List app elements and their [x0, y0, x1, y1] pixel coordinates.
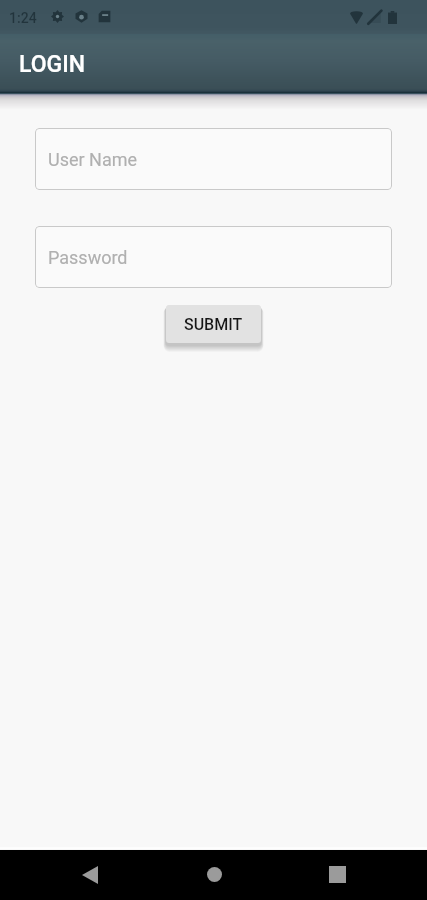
staticText: Password: [48, 247, 128, 268]
button[interactable]: Home: [186, 850, 242, 900]
button[interactable]: Password: [35, 226, 392, 288]
staticText: 1:24: [9, 10, 37, 26]
button[interactable]: SUBMIT: [166, 305, 261, 343]
button[interactable]: Back: [62, 850, 118, 900]
staticText: SUBMIT: [184, 315, 243, 334]
button[interactable]: Recent apps: [309, 850, 365, 900]
staticText: User Name: [48, 149, 138, 170]
staticText: LOGIN: [19, 51, 86, 78]
button[interactable]: User Name: [35, 128, 392, 190]
